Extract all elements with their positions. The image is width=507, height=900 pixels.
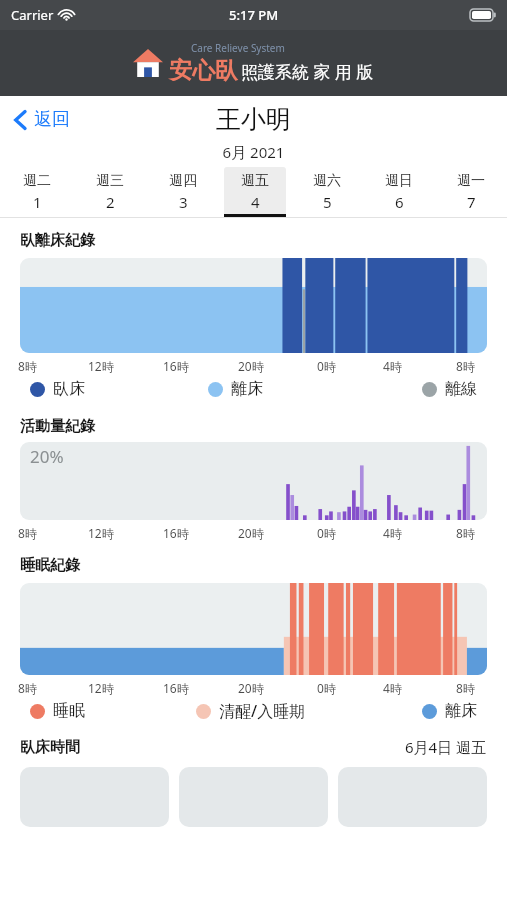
button[interactable]: 週四 [146, 167, 219, 217]
staticText: 週五 [241, 172, 269, 190]
staticText: 8時 [456, 358, 475, 374]
staticText: 8時 [18, 680, 37, 696]
staticText: 週六 [313, 172, 341, 190]
button[interactable]: 週三 [73, 167, 146, 217]
staticText: 4時 [383, 525, 402, 541]
staticText: 臥離床紀錄 [20, 231, 95, 250]
staticText: 16時 [163, 525, 189, 541]
staticText: 0時 [317, 680, 336, 696]
staticText: 週日 [385, 172, 413, 190]
staticText: 3 [179, 192, 188, 212]
staticText: Carrier [11, 6, 54, 24]
staticText: 12時 [88, 525, 114, 541]
staticText: 王小明 [216, 104, 291, 135]
button[interactable]: 返回 [10, 103, 74, 136]
button[interactable]: 週六 [291, 167, 363, 217]
button[interactable]: 離床 [208, 379, 263, 399]
staticText: 12時 [88, 358, 114, 374]
button[interactable]: 週二 [0, 167, 73, 217]
button[interactable]: 週五 [219, 167, 291, 217]
staticText: 2 [106, 192, 115, 212]
staticText: 睡眠紀錄 [20, 556, 80, 575]
staticText: 離線 [445, 379, 477, 399]
staticText: 7 [467, 192, 476, 212]
staticText: 16時 [163, 680, 189, 696]
staticText: 1 [33, 192, 42, 212]
staticText: 離床 [231, 379, 263, 399]
staticText: 照護系統 家 用 版 [241, 60, 374, 83]
button[interactable]: 睡眠 [30, 701, 85, 721]
staticText: 12時 [88, 680, 114, 696]
staticText: 安心臥 [169, 56, 238, 85]
staticText: 8時 [18, 358, 37, 374]
staticText: 週一 [457, 172, 485, 190]
staticText: 5:17 PM [229, 6, 279, 24]
staticText: 活動量紀錄 [20, 417, 95, 436]
staticText: 4時 [383, 680, 402, 696]
button[interactable]: 離床 [422, 701, 477, 721]
staticText: Care Relieve System [191, 41, 285, 55]
staticText: 6月4日 週五 [405, 737, 487, 757]
staticText: 6月 2021 [0, 142, 507, 162]
staticText: 20時 [238, 525, 264, 541]
button[interactable]: 週日 [363, 167, 435, 217]
staticText: 5 [323, 192, 332, 212]
staticText: 睡眠 [53, 701, 85, 721]
staticText: 臥床時間 [20, 738, 80, 757]
staticText: 8時 [456, 525, 475, 541]
staticText: 8時 [18, 525, 37, 541]
staticText: 8時 [456, 680, 475, 696]
button[interactable]: 離線 [422, 379, 477, 399]
staticText: 20時 [238, 680, 264, 696]
button[interactable]: 清醒/入睡期 [196, 700, 306, 722]
staticText: 0時 [317, 525, 336, 541]
staticText: 返回 [34, 108, 70, 131]
staticText: 週三 [96, 172, 124, 190]
staticText: 16時 [163, 358, 189, 374]
staticText: 4 [251, 192, 260, 212]
staticText: 20% [30, 445, 64, 468]
staticText: 20時 [238, 358, 264, 374]
button[interactable]: 臥床 [30, 379, 85, 399]
staticText: 0時 [317, 358, 336, 374]
other: Logo [133, 49, 163, 77]
staticText: 4時 [383, 358, 402, 374]
staticText: 離床 [445, 701, 477, 721]
staticText: 清醒/入睡期 [219, 700, 306, 722]
staticText: 6 [395, 192, 404, 212]
staticText: 臥床 [53, 379, 85, 399]
button[interactable]: 週一 [435, 167, 507, 217]
staticText: 週四 [169, 172, 197, 190]
staticText: 週二 [23, 172, 51, 190]
